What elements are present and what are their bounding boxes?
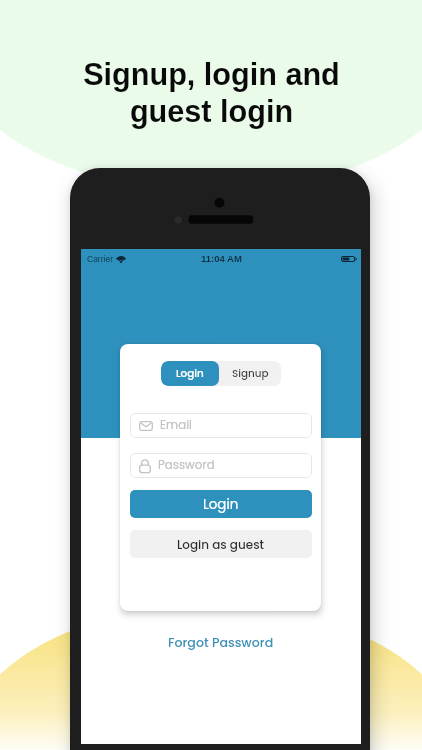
staticText: Forgot Password	[168, 634, 274, 652]
button[interactable]: Login	[161, 361, 219, 386]
button[interactable]: Email	[130, 413, 312, 438]
staticText: Login as guest	[177, 536, 265, 553]
staticText: 11:04 AM	[201, 253, 242, 264]
button[interactable]: Forgot Password	[160, 629, 282, 657]
button[interactable]: Signup	[219, 361, 281, 386]
button[interactable]: Login as guest	[130, 530, 312, 558]
staticText: Signup	[232, 366, 269, 381]
staticText: Signup, login and guest login	[83, 57, 340, 128]
button[interactable]: Password	[130, 453, 312, 478]
staticText: Email	[160, 417, 192, 434]
staticText: Login	[176, 366, 204, 381]
staticText: Password	[158, 457, 215, 474]
button[interactable]: Login	[130, 490, 312, 518]
staticText: Carrier	[87, 254, 113, 263]
staticText: Login	[203, 495, 239, 514]
